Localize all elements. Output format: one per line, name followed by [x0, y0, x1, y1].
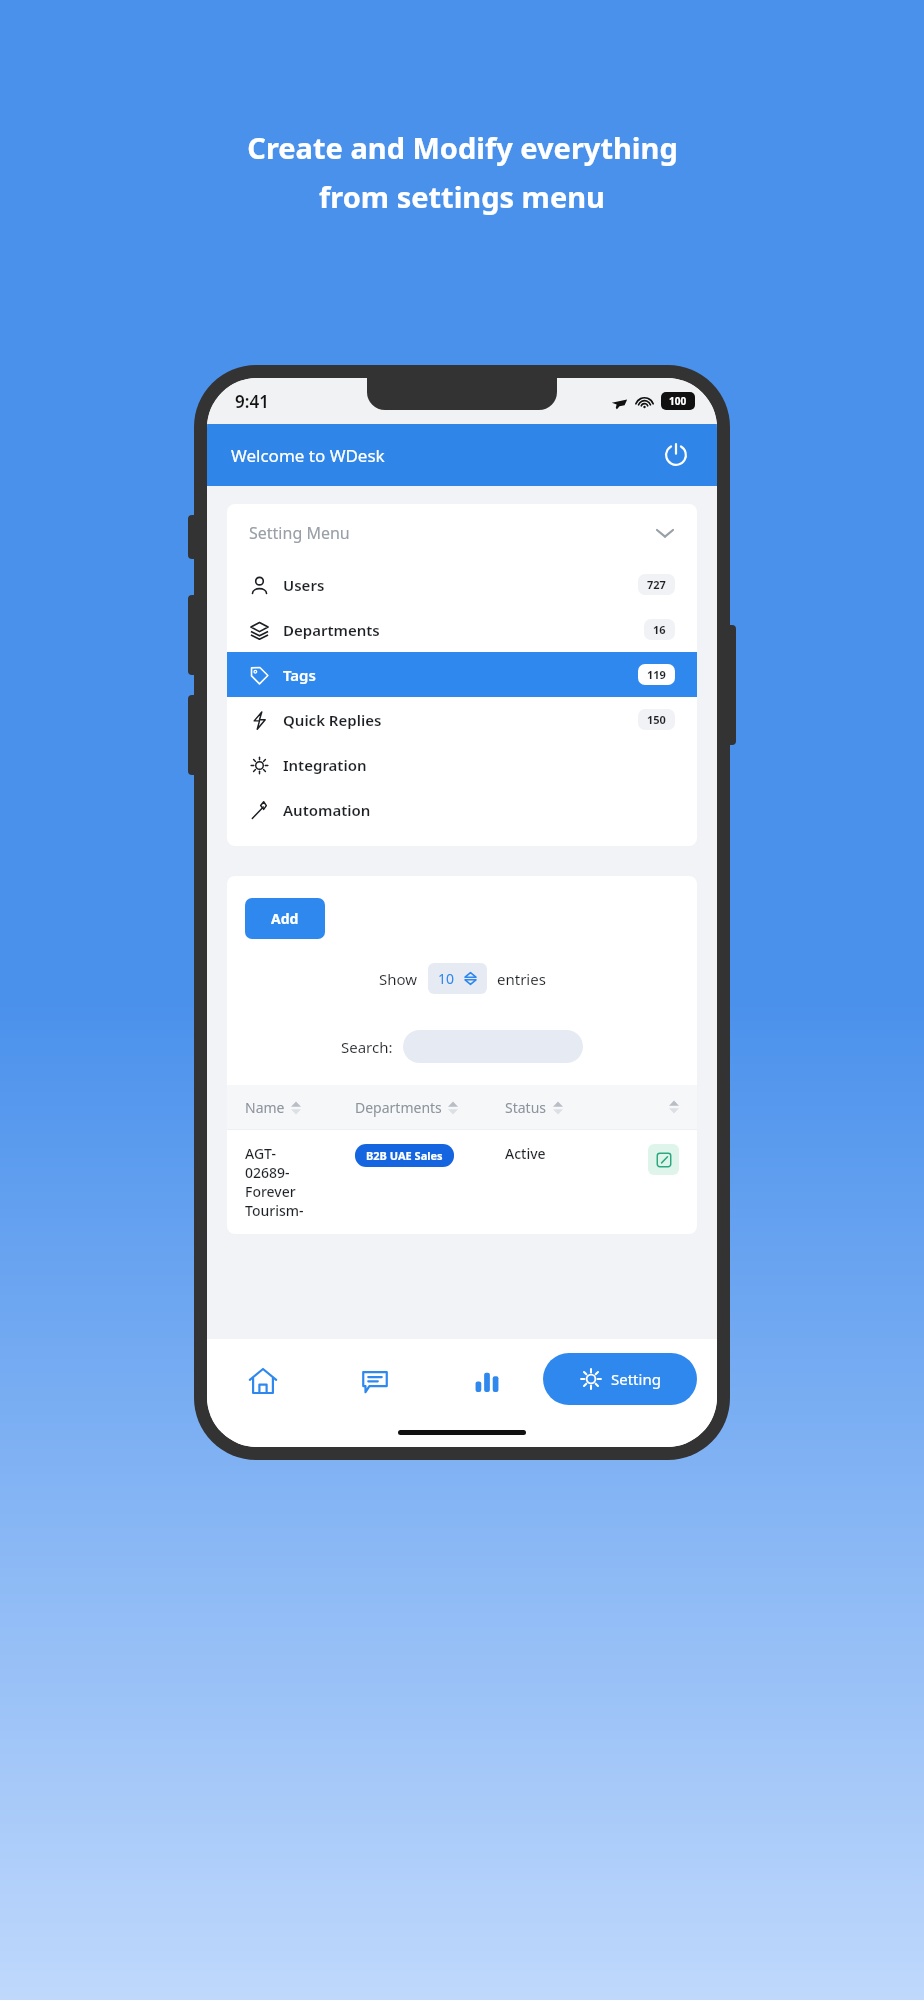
staticText: 727: [647, 577, 666, 592]
staticText: Integration: [283, 755, 367, 775]
button[interactable]: Home: [207, 1353, 319, 1409]
button[interactable]: Setting Menu: [249, 504, 675, 562]
staticText: 100: [669, 394, 687, 408]
staticText: entries: [497, 969, 546, 989]
staticText: Show: [379, 969, 418, 989]
staticText: 10: [438, 969, 455, 988]
staticText: Status: [505, 1098, 547, 1117]
staticText: Add: [271, 909, 299, 928]
button[interactable]: Messages: [319, 1353, 431, 1409]
staticText: Search:: [341, 1037, 393, 1057]
staticText: Automation: [283, 800, 371, 820]
button[interactable]: Power: [659, 438, 693, 472]
button[interactable]: 10: [428, 963, 487, 994]
button[interactable]: Users: [227, 562, 697, 607]
staticText: Departments: [283, 620, 380, 640]
button[interactable]: [403, 1030, 583, 1063]
staticText: 150: [647, 712, 666, 727]
staticText: B2B UAE Sales: [366, 1148, 443, 1163]
staticText: 9:41: [235, 390, 269, 413]
staticText: Tourism-: [245, 1201, 304, 1220]
button[interactable]: Integration: [227, 742, 697, 787]
button[interactable]: Edit: [648, 1144, 679, 1175]
staticText: 119: [647, 667, 666, 682]
staticText: Tags: [283, 665, 316, 685]
button[interactable]: Quick Replies: [227, 697, 697, 742]
staticText: 02689-: [245, 1163, 290, 1182]
staticText: AGT-: [245, 1144, 276, 1163]
staticText: Welcome to WDesk: [231, 444, 385, 467]
staticText: Create and Modify everything: [247, 128, 678, 167]
staticText: Setting: [611, 1369, 661, 1389]
staticText: Active: [505, 1144, 546, 1163]
staticText: Name: [245, 1098, 285, 1117]
staticText: Departments: [355, 1098, 442, 1117]
staticText: from settings menu: [319, 177, 605, 216]
button[interactable]: Add: [245, 898, 325, 939]
button[interactable]: Reports: [431, 1353, 543, 1409]
button[interactable]: AGT-: [245, 1144, 679, 1220]
button[interactable]: Setting: [543, 1353, 697, 1405]
button[interactable]: Tags: [227, 652, 697, 697]
staticText: 16: [653, 622, 666, 637]
button[interactable]: Departments: [227, 607, 697, 652]
staticText: Forever: [245, 1182, 296, 1201]
button[interactable]: Automation: [227, 787, 697, 832]
staticText: Quick Replies: [283, 710, 382, 730]
staticText: Users: [283, 575, 325, 595]
staticText: Setting Menu: [249, 522, 350, 544]
